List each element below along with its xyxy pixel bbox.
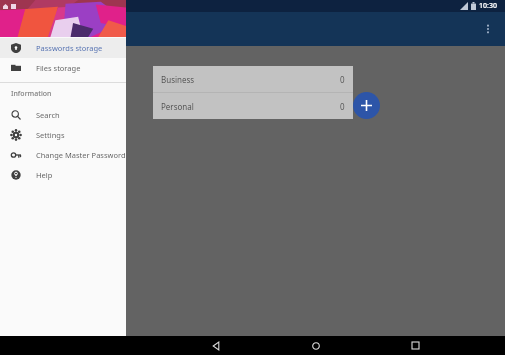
button[interactable]: Files storage [0, 58, 126, 78]
staticText: 0 [340, 74, 345, 85]
button[interactable]: Change Master Password [0, 145, 126, 165]
button[interactable]: Help [0, 165, 126, 185]
button[interactable]: Recents [405, 336, 425, 355]
button[interactable]: Passwords storage [0, 38, 126, 58]
button[interactable]: Search [0, 105, 126, 125]
staticText: Information [11, 89, 52, 99]
staticText: Business [161, 74, 195, 85]
staticText: Change Master Password [36, 150, 126, 160]
button[interactable]: Settings [0, 125, 126, 145]
button[interactable]: Personal [153, 93, 353, 119]
staticText: Help [36, 170, 53, 180]
button[interactable]: Business [153, 66, 353, 92]
staticText: Files storage [36, 63, 81, 73]
staticText: Settings [36, 130, 65, 140]
staticText: 10:30 [479, 1, 497, 11]
staticText: Passwords storage [36, 43, 103, 53]
button[interactable]: Add [353, 92, 380, 119]
staticText: Personal [161, 101, 194, 112]
button[interactable]: Home [306, 336, 326, 355]
button[interactable]: More options [476, 17, 500, 41]
staticText: Search [36, 110, 60, 120]
staticText: 0 [340, 101, 345, 112]
button[interactable]: Back [206, 336, 226, 355]
